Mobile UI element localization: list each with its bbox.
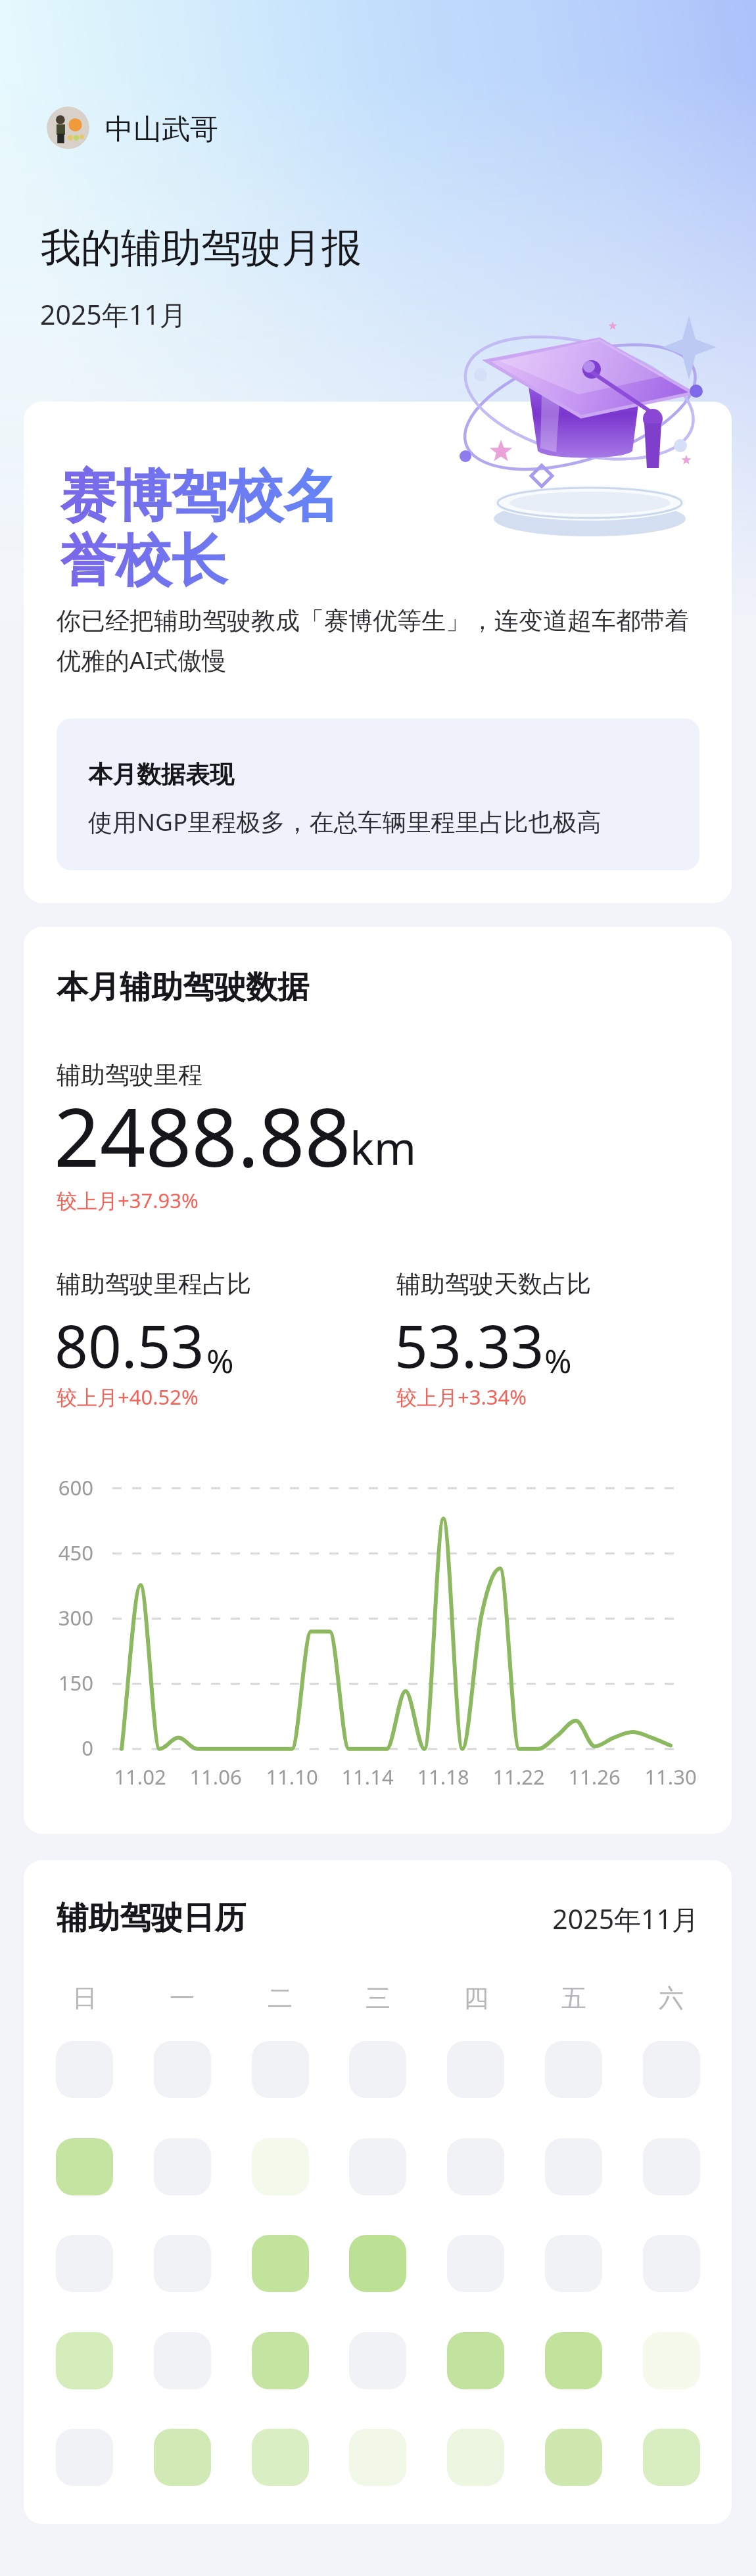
button[interactable] <box>545 2332 602 2389</box>
button[interactable] <box>349 2429 406 2486</box>
button[interactable] <box>349 2041 406 2098</box>
staticText: 本月辅助驾驶数据 <box>57 968 309 1007</box>
button[interactable] <box>154 2429 211 2486</box>
button[interactable] <box>349 2332 406 2389</box>
staticText: 较上月+37.93% <box>57 1186 199 1214</box>
staticText: 辅助驾驶里程 <box>57 1060 202 1090</box>
button[interactable] <box>447 2235 504 2292</box>
staticText: 较上月+3.34% <box>396 1383 527 1411</box>
button[interactable]: User avatar <box>47 106 89 149</box>
button[interactable] <box>545 2429 602 2486</box>
staticText: 六 <box>632 1982 711 2014</box>
staticText: 辅助驾驶里程占比 <box>57 1269 251 1300</box>
staticText: 300 <box>7 1604 93 1631</box>
button[interactable] <box>56 2332 113 2389</box>
button[interactable] <box>643 2138 700 2195</box>
button[interactable] <box>56 2041 113 2098</box>
staticText: 辅助驾驶日历 <box>57 1898 246 1938</box>
button[interactable] <box>643 2235 700 2292</box>
staticText: 2025年11月 <box>40 296 187 333</box>
staticText: 日 <box>45 1982 124 2014</box>
button[interactable] <box>447 2429 504 2486</box>
staticText: 一 <box>143 1982 222 2014</box>
staticText: 11.22 <box>473 1763 565 1791</box>
staticText: 80.53 <box>55 1305 204 1385</box>
staticText: 2025年11月 <box>521 1900 699 1937</box>
button[interactable] <box>252 2138 309 2195</box>
staticText: 二 <box>241 1982 319 2014</box>
staticText: 中山武哥 <box>105 112 218 147</box>
staticText: 450 <box>7 1539 93 1566</box>
staticText: 11.30 <box>625 1763 717 1791</box>
staticText: 11.26 <box>548 1763 640 1791</box>
staticText: % <box>206 1338 234 1383</box>
staticText: 150 <box>7 1669 93 1697</box>
staticText: 使用NGP里程极多，在总车辆里程里占比也极高 <box>88 805 602 838</box>
button[interactable] <box>252 2332 309 2389</box>
staticText: 53.33 <box>394 1305 544 1385</box>
staticText: 赛博驾校名 誉校长 <box>60 461 339 596</box>
staticText: 四 <box>437 1982 515 2014</box>
button[interactable] <box>447 2138 504 2195</box>
button[interactable] <box>545 2041 602 2098</box>
button[interactable] <box>154 2041 211 2098</box>
button[interactable] <box>252 2041 309 2098</box>
button[interactable] <box>154 2138 211 2195</box>
button[interactable] <box>56 2429 113 2486</box>
button[interactable] <box>447 2041 504 2098</box>
button[interactable] <box>545 2138 602 2195</box>
staticText: 600 <box>7 1474 93 1501</box>
button[interactable] <box>56 2235 113 2292</box>
staticText: 你已经把辅助驾驶教成「赛博优等生」，连变道超车都带着优雅的AI式傲慢 <box>57 605 701 676</box>
staticText: 较上月+40.52% <box>57 1383 199 1411</box>
button[interactable] <box>252 2235 309 2292</box>
staticText: 本月数据表现 <box>88 759 234 790</box>
button[interactable] <box>447 2332 504 2389</box>
staticText: km <box>350 1116 417 1178</box>
button[interactable] <box>56 2138 113 2195</box>
button[interactable] <box>154 2332 211 2389</box>
button[interactable] <box>252 2429 309 2486</box>
button[interactable] <box>545 2235 602 2292</box>
staticText: 11.02 <box>94 1763 186 1791</box>
staticText: 辅助驾驶天数占比 <box>396 1269 591 1300</box>
button[interactable] <box>349 2235 406 2292</box>
staticText: 五 <box>534 1982 613 2014</box>
staticText: % <box>544 1338 572 1383</box>
button[interactable] <box>643 2041 700 2098</box>
staticText: 我的辅助驾驶月报 <box>41 223 362 273</box>
button[interactable] <box>643 2429 700 2486</box>
staticText: 11.10 <box>246 1763 338 1791</box>
button[interactable] <box>643 2332 700 2389</box>
staticText: 11.18 <box>397 1763 489 1791</box>
button[interactable] <box>154 2235 211 2292</box>
staticText: 2488.88 <box>54 1081 351 1190</box>
staticText: 三 <box>339 1982 417 2014</box>
staticText: 11.14 <box>321 1763 413 1791</box>
button[interactable] <box>349 2138 406 2195</box>
staticText: 11.06 <box>170 1763 262 1791</box>
staticText: 0 <box>7 1734 93 1762</box>
